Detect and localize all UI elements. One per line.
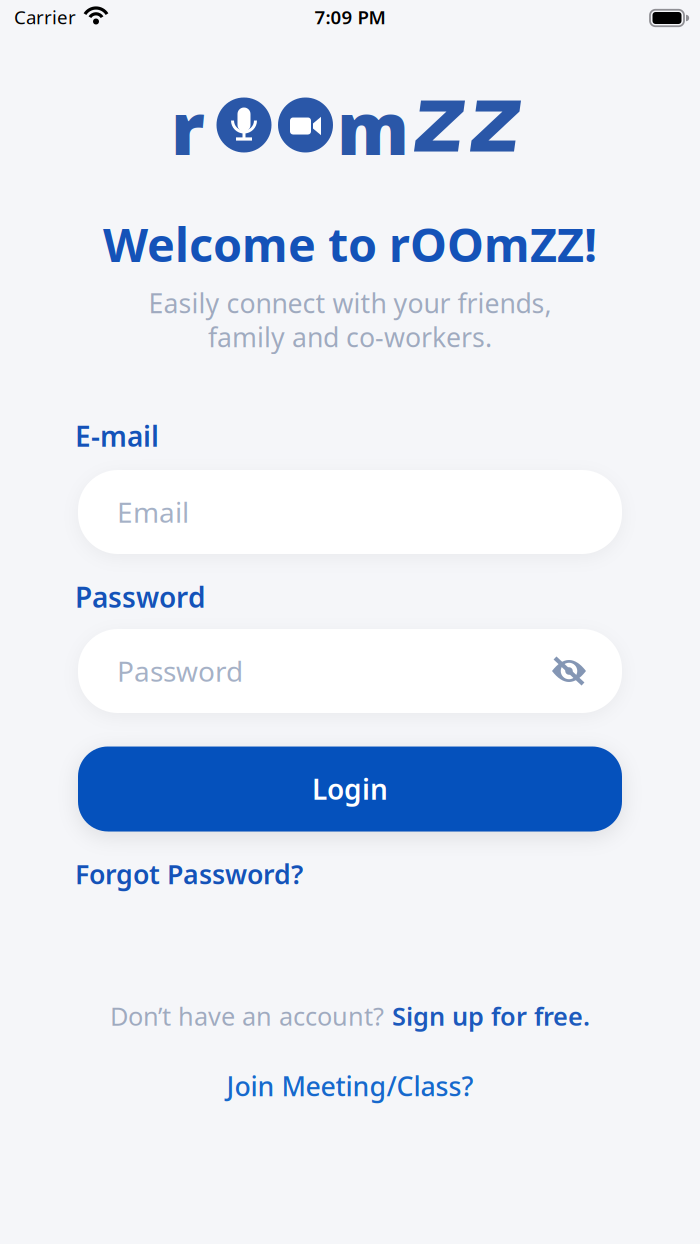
staticText: Password	[75, 578, 206, 616]
button[interactable]: Login	[78, 746, 622, 831]
button[interactable]: Password	[78, 629, 622, 713]
staticText: Password	[117, 652, 243, 690]
staticText: family and co-workers.	[208, 319, 492, 355]
staticText: Carrier	[14, 5, 76, 29]
staticText: Don’t have an account?	[110, 999, 384, 1033]
staticText: Sign up for free.	[392, 999, 590, 1033]
staticText: Join Meeting/Class?	[226, 1068, 473, 1104]
staticText: E-mail	[75, 417, 159, 455]
button[interactable]: Forgot Password?	[75, 856, 303, 892]
button[interactable]: Email	[78, 470, 622, 554]
staticText: Login	[312, 770, 388, 808]
staticText: Email	[117, 493, 189, 531]
staticText: Welcome to rOOmZZ!	[103, 213, 597, 275]
staticText: Easily connect with your friends,	[148, 285, 551, 321]
staticText: Forgot Password?	[75, 856, 303, 892]
button[interactable]: Sign up for free.	[392, 999, 590, 1033]
staticText: m	[337, 79, 409, 175]
staticText: 7:09 PM	[314, 5, 385, 29]
staticText: r	[171, 79, 205, 175]
button[interactable]: Join Meeting/Class?	[226, 1068, 473, 1104]
